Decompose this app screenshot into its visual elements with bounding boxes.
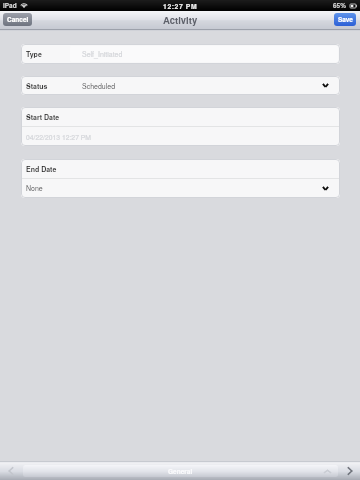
staticText: Type — [26, 49, 42, 59]
button[interactable]: End Date — [21, 159, 340, 198]
staticText: Scheduled — [82, 81, 116, 91]
button[interactable]: Status — [21, 76, 340, 95]
button[interactable]: Next field — [343, 464, 356, 478]
button[interactable]: Previous field — [4, 464, 17, 478]
button[interactable]: Cancel — [3, 13, 32, 26]
staticText: Activity — [163, 13, 198, 27]
button[interactable]: Save — [334, 13, 356, 26]
staticText: iPad — [3, 1, 17, 10]
staticText: General — [168, 467, 193, 476]
staticText: Start Date — [26, 112, 60, 122]
staticText: Save — [338, 15, 353, 24]
staticText: 04/22/2013 12:27 PM — [26, 132, 91, 142]
staticText: Self_Initiated — [82, 49, 123, 59]
button[interactable]: Type — [21, 44, 340, 64]
staticText: Cancel — [7, 15, 29, 24]
staticText: 12:27 PM — [163, 1, 198, 11]
staticText: End Date — [26, 164, 57, 174]
button[interactable]: General — [23, 465, 338, 477]
staticText: 65% — [333, 1, 347, 10]
staticText: Status — [26, 81, 48, 91]
button[interactable]: Start Date — [21, 107, 340, 146]
staticText: None — [26, 183, 43, 193]
